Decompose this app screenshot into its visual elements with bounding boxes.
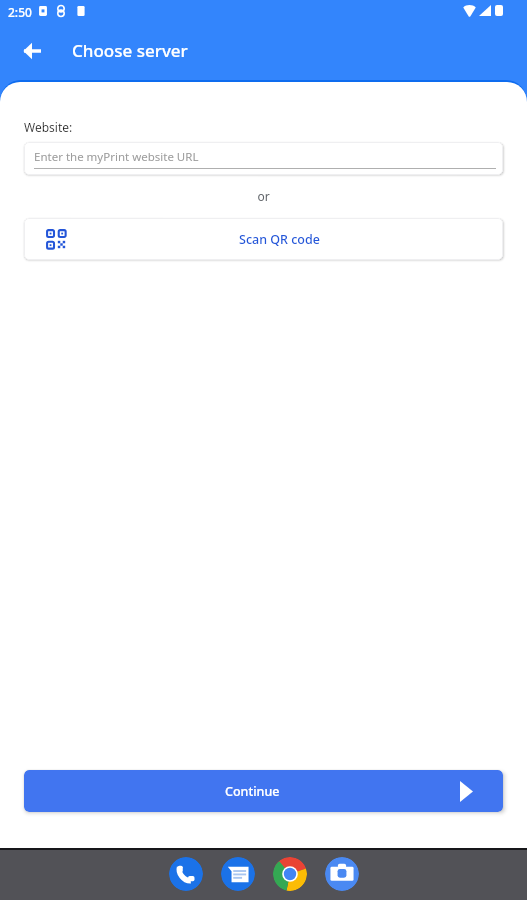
staticText: Enter the myPrint website URL bbox=[34, 149, 199, 165]
button[interactable]: Back bbox=[12, 30, 52, 70]
button[interactable]: Enter the myPrint website URL bbox=[24, 142, 503, 175]
staticText: Choose server bbox=[72, 39, 188, 62]
button[interactable]: Scan QR code bbox=[24, 218, 503, 260]
staticText: Website: bbox=[24, 119, 73, 135]
button[interactable]: Phone bbox=[169, 857, 203, 891]
button[interactable]: Continue bbox=[24, 770, 503, 812]
button[interactable]: Camera bbox=[325, 857, 359, 891]
staticText: or bbox=[0, 188, 527, 204]
staticText: Scan QR code bbox=[239, 231, 320, 248]
button[interactable]: Messages bbox=[221, 857, 255, 891]
staticText: 2:50 bbox=[8, 4, 32, 20]
staticText: Continue bbox=[225, 783, 280, 800]
button[interactable]: Chrome bbox=[273, 857, 307, 891]
